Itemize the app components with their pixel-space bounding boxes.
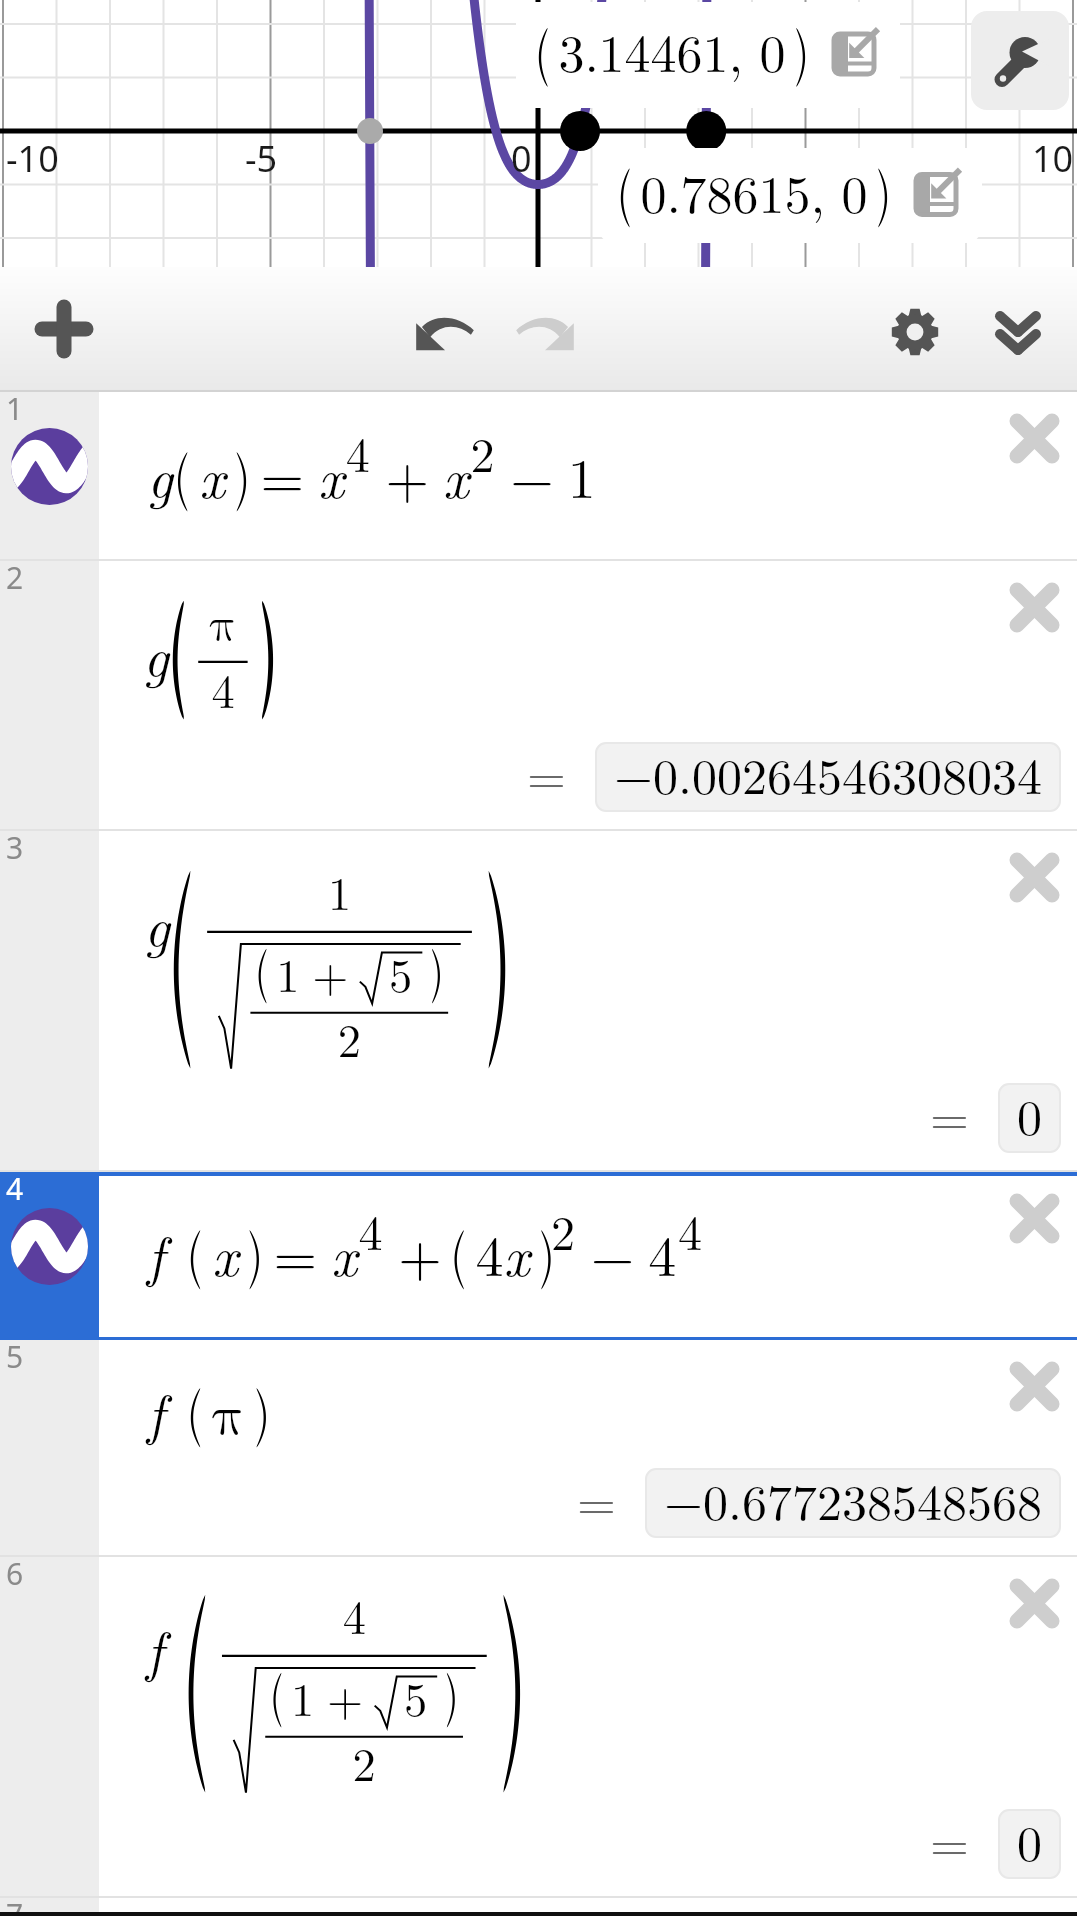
staticText: -5 xyxy=(245,134,278,183)
button[interactable]: Delete expression 1 xyxy=(1011,415,1058,462)
button[interactable]: 3 xyxy=(0,831,1077,1172)
button[interactable]: 5 xyxy=(0,1340,1077,1557)
button[interactable]: Settings xyxy=(872,289,958,375)
button[interactable]: 4 xyxy=(0,1172,1077,1340)
staticText: 4 xyxy=(6,1168,24,1209)
staticText: 1 xyxy=(6,388,24,429)
button[interactable]: Collapse xyxy=(975,289,1061,375)
button[interactable]: Delete expression 6 xyxy=(1011,1580,1058,1627)
staticText: 0 xyxy=(511,134,532,183)
button[interactable]: (3.14461, 0) xyxy=(516,2,900,108)
staticText: 5 xyxy=(6,1336,24,1377)
staticText: -10 xyxy=(6,134,59,183)
staticText: 7 xyxy=(6,1894,24,1912)
staticText: 10 xyxy=(1032,134,1074,183)
staticText: 2 xyxy=(6,557,24,598)
button[interactable]: Redo xyxy=(500,289,590,379)
staticText: 3 xyxy=(6,827,24,868)
button[interactable]: 2 xyxy=(0,561,1077,831)
button[interactable]: Delete expression 3 xyxy=(1011,854,1058,901)
button[interactable]: Delete expression 4 xyxy=(1011,1195,1058,1242)
button[interactable]: Delete expression 5 xyxy=(1011,1363,1058,1410)
button[interactable]: (0.78615, 0) xyxy=(598,148,982,243)
button[interactable]: 6 xyxy=(0,1557,1077,1898)
button[interactable]: Undo xyxy=(400,289,490,379)
button[interactable]: Delete expression 2 xyxy=(1011,584,1058,631)
button[interactable]: Add expression xyxy=(22,287,106,371)
staticText: 6 xyxy=(6,1553,24,1594)
button[interactable]: 7 xyxy=(0,1898,1077,1916)
button[interactable]: 1 xyxy=(0,392,1077,561)
button[interactable]: Graph settings xyxy=(971,11,1069,110)
